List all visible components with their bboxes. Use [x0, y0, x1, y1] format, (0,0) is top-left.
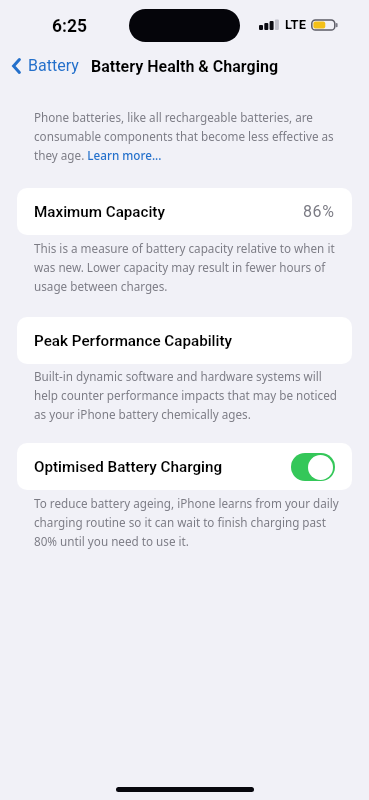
- staticText: 6:25: [52, 16, 88, 37]
- button[interactable]: Battery: [0, 56, 85, 75]
- staticText: Phone batteries, like all rechargeable b…: [34, 109, 346, 163]
- button[interactable]: Peak Performance Capability: [17, 317, 352, 364]
- button[interactable]: Optimised Battery Charging, on: [291, 453, 335, 481]
- staticText: Optimised Battery Charging: [34, 458, 223, 476]
- button[interactable]: Optimised Battery Charging: [17, 443, 352, 490]
- staticText: This is a measure of battery capacity re…: [34, 240, 346, 294]
- staticText: Built-in dynamic software and hardware s…: [34, 368, 346, 422]
- staticText: Battery: [28, 56, 79, 75]
- staticText: Peak Performance Capability: [34, 332, 233, 350]
- staticText: LTE: [285, 17, 306, 32]
- staticText: Maximum Capacity: [34, 203, 166, 221]
- staticText: Battery Health & Charging: [91, 57, 279, 76]
- staticText: To reduce battery ageing, iPhone learns …: [34, 495, 346, 549]
- button[interactable]: Maximum Capacity: [17, 188, 352, 235]
- staticText: 86%: [303, 202, 335, 221]
